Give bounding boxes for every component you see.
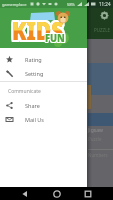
staticText: Numbers [88, 152, 108, 158]
staticText: gamereplace [2, 2, 27, 7]
staticText: KIDS [10, 15, 62, 48]
staticText: FUN [44, 31, 65, 46]
staticText: FUN [45, 31, 65, 46]
staticText: 11:24 [99, 1, 111, 7]
staticText: PUZZLE [94, 27, 111, 33]
staticText: KIDS [11, 16, 63, 49]
staticText: KIDS [14, 12, 66, 45]
staticText: Mail Us [25, 116, 44, 123]
staticText: Jigsaw [88, 127, 103, 134]
staticText: KIDS [11, 15, 63, 48]
staticText: FUN [46, 29, 66, 44]
staticText: KIDS [11, 14, 63, 47]
staticText: KIDS [14, 15, 66, 48]
staticText: Puzzle [88, 136, 102, 142]
staticText: KIDS [14, 16, 66, 49]
staticText: FUN [44, 29, 65, 44]
staticText: KIDS [10, 13, 62, 46]
button[interactable]: Rating [0, 52, 87, 66]
staticText: KIDS [13, 14, 65, 47]
staticText: KIDS [12, 14, 64, 47]
staticText: KIDS [10, 12, 62, 45]
staticText: Rating [25, 56, 42, 63]
button[interactable]: Back [19, 188, 31, 200]
button[interactable]: Recents [82, 188, 94, 200]
staticText: Communicate [8, 88, 41, 95]
staticText: KIDS [11, 12, 63, 45]
staticText: KIDS [12, 13, 64, 46]
staticText: KIDS [14, 13, 66, 46]
staticText: KIDS [14, 14, 66, 47]
staticText: KIDS [13, 12, 65, 45]
staticText: KIDS [12, 16, 64, 49]
staticText: KIDS [10, 14, 62, 47]
staticText: KIDS [12, 14, 64, 47]
staticText: FUN [45, 29, 65, 44]
staticText: KIDS [13, 13, 65, 46]
button[interactable]: Settings [100, 11, 109, 20]
staticText: FUN [44, 30, 65, 45]
staticText: Share [25, 102, 40, 109]
staticText: FUN [46, 31, 66, 46]
staticText: FUN [46, 30, 66, 45]
staticText: KIDS [12, 12, 64, 45]
button[interactable]: Share [0, 98, 87, 112]
staticText: 58% [67, 2, 75, 7]
staticText: KIDS [12, 15, 64, 48]
staticText: KIDS [13, 16, 65, 49]
button[interactable]: Home [51, 188, 63, 200]
staticText: Setting [25, 70, 44, 77]
button[interactable]: Setting [0, 66, 87, 80]
staticText: KIDS [13, 15, 65, 48]
staticText: KIDS [11, 13, 63, 46]
staticText: FUN [45, 30, 65, 45]
staticText: KIDS [10, 16, 62, 49]
button[interactable]: Mail Us [0, 112, 87, 126]
